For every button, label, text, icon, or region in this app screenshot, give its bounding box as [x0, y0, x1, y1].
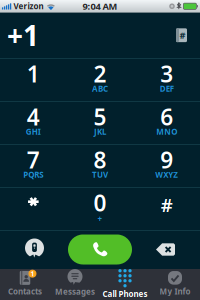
staticText: 9:04 AM: [82, 0, 117, 12]
staticText: WXYZ: [155, 169, 178, 180]
button[interactable]: 1: [0, 269, 50, 300]
button[interactable]: Call Phones: [100, 269, 150, 300]
button[interactable]: Voicemail: [1, 230, 68, 269]
staticText: 9: [160, 145, 173, 175]
button[interactable]: 8: [67, 144, 133, 187]
staticText: Contacts: [8, 286, 42, 297]
button[interactable]: 2: [67, 58, 133, 101]
staticText: JKL: [94, 126, 106, 137]
staticText: #: [179, 29, 185, 41]
button[interactable]: 0: [67, 187, 133, 230]
button[interactable]: 6: [133, 101, 200, 144]
staticText: 1: [30, 269, 34, 278]
staticText: Messages: [55, 286, 95, 297]
staticText: 1: [27, 59, 40, 89]
staticText: 8: [93, 145, 106, 175]
button[interactable]: 9: [133, 144, 200, 187]
button[interactable]: #: [133, 187, 200, 230]
staticText: 7: [27, 145, 40, 175]
staticText: 5: [93, 102, 106, 132]
staticText: +1: [7, 17, 39, 54]
staticText: My Info: [159, 286, 190, 297]
staticText: MNO: [156, 126, 177, 137]
staticText: TUV: [92, 169, 108, 180]
button[interactable]: [0, 187, 67, 230]
button[interactable]: My Info: [150, 269, 200, 300]
button[interactable]: 1: [0, 58, 67, 101]
button[interactable]: Messages: [50, 269, 100, 300]
staticText: +: [97, 214, 102, 224]
staticText: #: [161, 192, 173, 217]
staticText: 3: [160, 59, 173, 89]
staticText: 4: [27, 102, 40, 132]
button[interactable]: Call: [68, 234, 132, 264]
staticText: GHI: [26, 126, 41, 137]
staticText: 0: [93, 188, 106, 218]
button[interactable]: Add contact: [169, 21, 194, 49]
staticText: Verizon: [14, 1, 44, 11]
staticText: PQRS: [23, 169, 43, 180]
button[interactable]: 5: [67, 101, 133, 144]
staticText: DEF: [160, 83, 174, 94]
staticText: 6: [160, 102, 173, 132]
button[interactable]: 4: [0, 101, 67, 144]
button[interactable]: 3: [133, 58, 200, 101]
staticText: ABC: [92, 83, 108, 94]
staticText: 2: [93, 59, 106, 89]
button[interactable]: 7: [0, 144, 67, 187]
button[interactable]: Delete: [132, 230, 199, 269]
staticText: Call Phones: [102, 289, 147, 299]
